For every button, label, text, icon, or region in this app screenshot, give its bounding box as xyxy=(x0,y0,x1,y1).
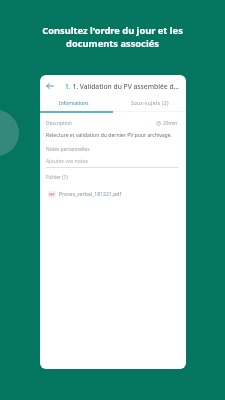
button[interactable]: Sous-sujets (2) xyxy=(113,97,186,110)
staticText: Relecture et validation du dernier PV po… xyxy=(46,132,172,139)
button[interactable]: Informations xyxy=(40,97,113,110)
staticText: Notes personnelles xyxy=(46,146,90,153)
staticText: PDF xyxy=(49,193,55,197)
staticText: 20min xyxy=(163,120,178,127)
button[interactable]: Back xyxy=(43,79,57,93)
staticText: Description xyxy=(46,120,72,127)
staticText: Ajoutez vos notes xyxy=(46,158,88,165)
staticText: Informations xyxy=(59,100,89,107)
staticText: Consultez l'ordre du jour et les documen… xyxy=(16,24,209,50)
staticText: 1. 1. Validation du PV assemblée d… xyxy=(65,82,179,91)
staticText: Fichier (1) xyxy=(46,174,68,181)
staticText: Proces_verbal_181221.pdf xyxy=(59,191,122,198)
staticText: Sous-sujets (2) xyxy=(131,100,169,107)
button[interactable]: PDF xyxy=(46,191,178,198)
